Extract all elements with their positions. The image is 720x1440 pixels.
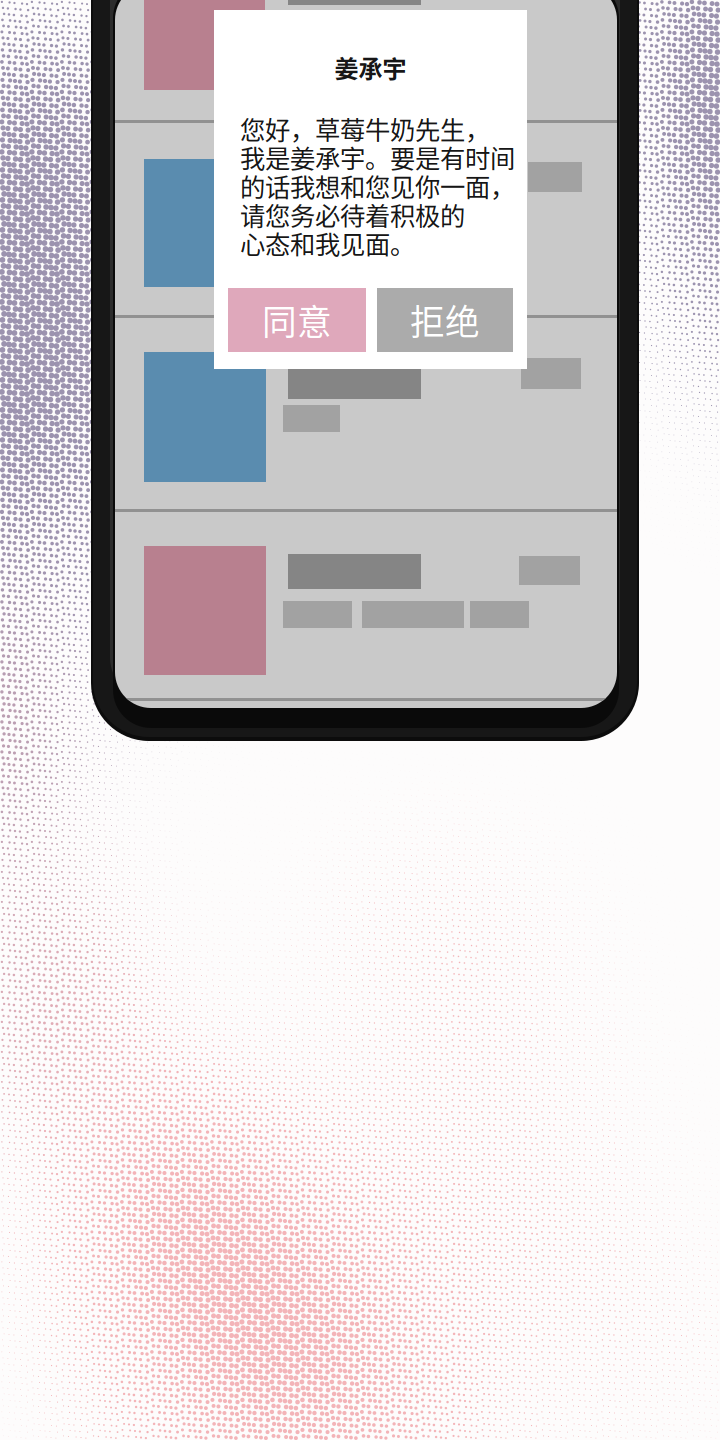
staticText: 拒绝 xyxy=(410,295,480,345)
button[interactable]: 拒绝 xyxy=(377,288,513,352)
staticText: 姜承宇 xyxy=(334,50,406,85)
staticText: 您好，草莓牛奶先生， xyxy=(240,110,490,147)
staticText: 我是姜承宇。要是有时间 xyxy=(240,139,515,175)
staticText: 心态和我见面。 xyxy=(240,225,415,261)
button[interactable]: 同意 xyxy=(228,288,366,352)
staticText: 请您务必待着积极的 xyxy=(240,196,465,233)
staticText: 同意 xyxy=(262,295,332,345)
staticText: 的话我想和您见你一面， xyxy=(240,167,515,204)
